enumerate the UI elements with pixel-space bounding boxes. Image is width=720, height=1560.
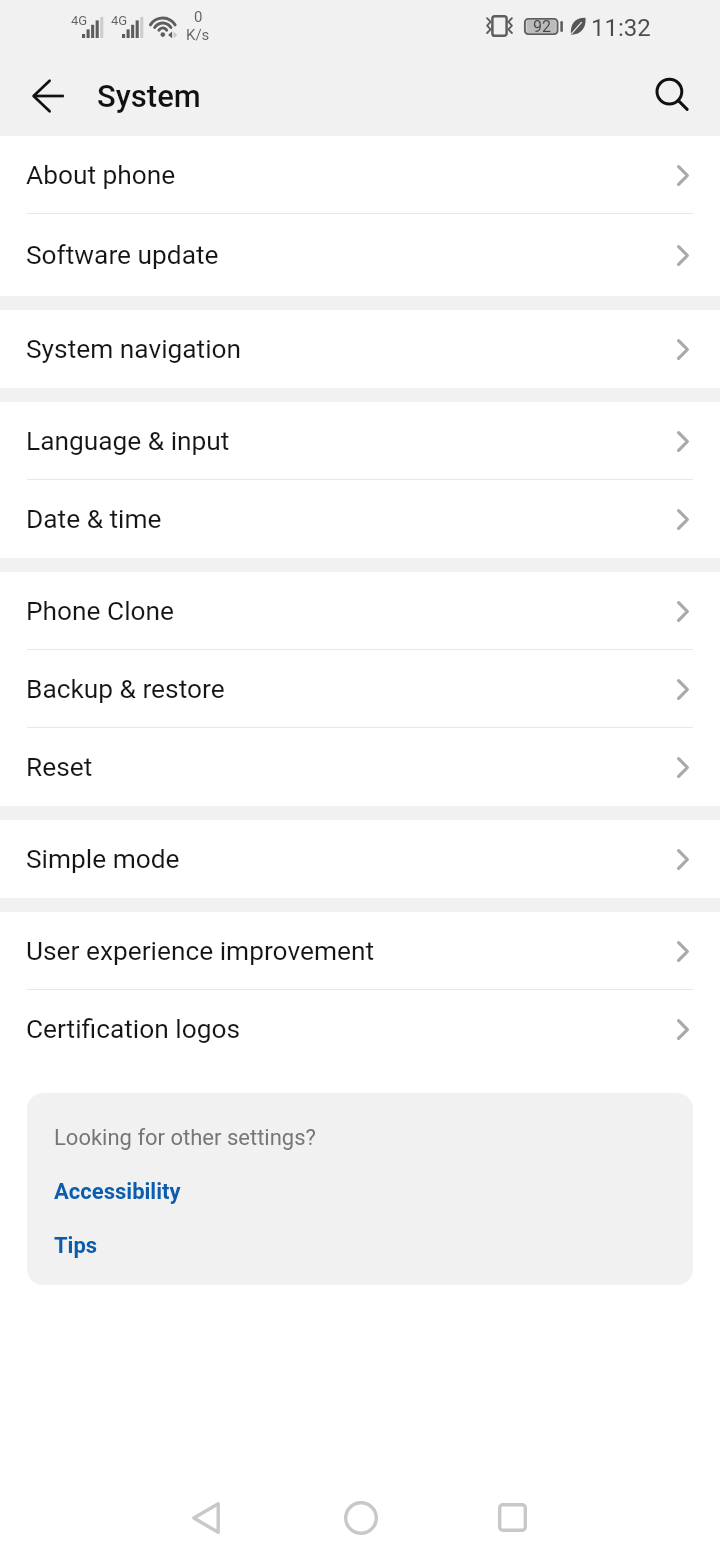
staticText: 0 — [194, 8, 203, 26]
button[interactable]: Certification logos — [0, 990, 720, 1068]
staticText: Tips — [54, 1233, 98, 1259]
button[interactable]: Home — [313, 1470, 409, 1560]
staticText: Phone Clone — [26, 596, 175, 627]
button[interactable]: System navigation — [0, 310, 720, 388]
staticText: System navigation — [26, 334, 242, 365]
button[interactable]: Phone Clone — [0, 572, 720, 650]
button[interactable]: Tips — [27, 1232, 693, 1260]
staticText: Simple mode — [26, 844, 180, 875]
staticText: 4G — [111, 13, 128, 28]
button[interactable]: Back — [158, 1470, 254, 1560]
button[interactable]: About phone — [0, 136, 720, 214]
button[interactable]: Search — [640, 64, 704, 128]
staticText: 4G — [71, 13, 88, 28]
staticText: Software update — [26, 240, 219, 271]
staticText: About phone — [26, 160, 176, 191]
staticText: Accessibility — [54, 1179, 181, 1205]
staticText: Reset — [26, 752, 93, 783]
staticText: Certification logos — [26, 1014, 241, 1045]
button[interactable]: Backup & restore — [0, 650, 720, 728]
staticText: Backup & restore — [26, 674, 225, 705]
staticText: 11:32 — [591, 14, 651, 42]
button[interactable]: Accessibility — [27, 1178, 693, 1206]
button[interactable]: Language & input — [0, 402, 720, 480]
staticText: System — [97, 78, 201, 114]
staticText: Date & time — [26, 504, 162, 535]
button[interactable]: Date & time — [0, 480, 720, 558]
button[interactable]: Simple mode — [0, 820, 720, 898]
button[interactable]: Reset — [0, 728, 720, 806]
staticText: K/s — [186, 26, 210, 44]
button[interactable]: User experience improvement — [0, 912, 720, 990]
button[interactable]: Software update — [0, 214, 720, 296]
staticText: Looking for other settings? — [54, 1125, 316, 1151]
staticText: User experience improvement — [26, 936, 375, 967]
button[interactable]: Back — [17, 64, 81, 128]
staticText: 92 — [533, 17, 551, 36]
staticText: Language & input — [26, 426, 230, 457]
button[interactable]: Recents — [464, 1469, 560, 1560]
